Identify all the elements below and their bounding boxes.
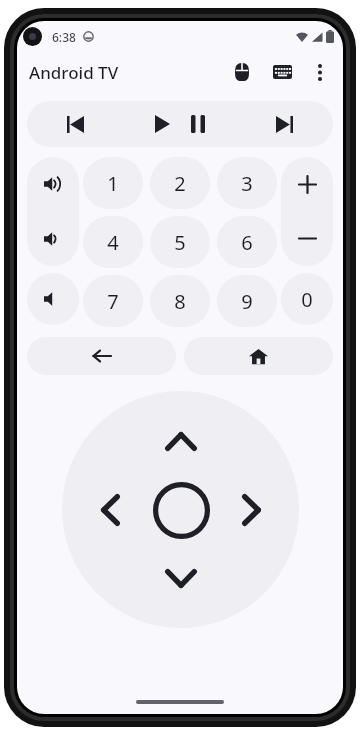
button[interactable]: 4 [83, 216, 143, 268]
button[interactable]: 5 [150, 216, 210, 268]
button[interactable]: Volume down [27, 211, 79, 266]
staticText: 1 [107, 170, 119, 197]
button[interactable]: 2 [150, 157, 210, 209]
button[interactable]: Keyboard [265, 55, 299, 89]
staticText: 5 [174, 229, 186, 256]
button[interactable]: 1 [83, 157, 143, 209]
button[interactable]: Down [153, 550, 209, 606]
button[interactable]: 8 [150, 275, 210, 327]
button[interactable]: Select [148, 477, 214, 543]
button[interactable]: More options [303, 55, 337, 89]
button[interactable]: Home [184, 337, 333, 375]
button[interactable]: Left [82, 482, 138, 538]
staticText: Android TV [29, 61, 119, 84]
button[interactable]: 6 [217, 216, 277, 268]
staticText: 8 [174, 288, 186, 315]
button[interactable]: Skip previous [27, 101, 124, 147]
button[interactable]: 7 [83, 275, 143, 327]
staticText: 3 [241, 170, 253, 197]
staticText: 7 [107, 288, 119, 315]
button[interactable]: 3 [217, 157, 277, 209]
button[interactable]: Touchpad [225, 55, 259, 89]
button[interactable]: Mute [27, 273, 79, 325]
staticText: 6:38 [52, 29, 76, 45]
button[interactable]: Channel up [281, 157, 333, 211]
staticText: 2 [174, 170, 186, 197]
staticText: 4 [107, 229, 119, 256]
button[interactable]: Volume up [27, 157, 79, 211]
button[interactable]: Channel down [281, 211, 333, 266]
button[interactable]: Skip next [236, 101, 333, 147]
button[interactable]: 9 [217, 275, 277, 327]
button[interactable]: 0 [281, 273, 333, 325]
button[interactable]: Pause [180, 106, 216, 142]
staticText: 6 [241, 229, 253, 256]
button[interactable]: Right [223, 482, 279, 538]
staticText: 0 [301, 286, 313, 313]
button[interactable]: Up [153, 413, 209, 469]
staticText: 9 [241, 288, 253, 315]
button[interactable]: Play [144, 106, 180, 142]
button[interactable]: Back [27, 337, 176, 375]
